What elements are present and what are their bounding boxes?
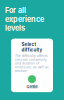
staticText: For all experience levels: [5, 6, 44, 33]
staticText: Select difficulty: [21, 42, 42, 53]
staticText: Gentle: [26, 85, 37, 89]
staticText: The difficulty affects session complexit…: [15, 54, 49, 73]
